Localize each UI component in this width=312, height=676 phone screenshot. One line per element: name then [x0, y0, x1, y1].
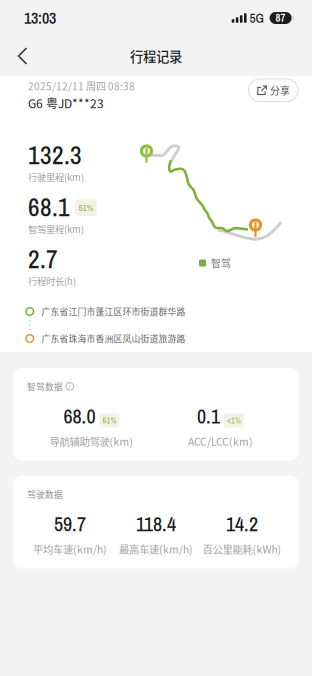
staticText: 广东省珠海市香洲区凤山街道旅游路: [41, 332, 185, 345]
staticText: 5G: [247, 9, 265, 27]
staticText: 行驶里程(km): [28, 170, 84, 184]
staticText: 分享: [270, 83, 290, 97]
staticText: 行程记录: [130, 46, 182, 66]
staticText: 59.7: [54, 510, 86, 537]
staticText: 智驾里程(km): [28, 222, 84, 236]
staticText: 智驾数据: [27, 380, 63, 393]
staticText: 132.3: [28, 138, 82, 172]
staticText: ACC/LCC(km): [188, 434, 253, 449]
staticText: 驾驶数据: [27, 488, 63, 500]
staticText: 百公里能耗(kWh): [202, 541, 281, 556]
staticText: 14.2: [226, 510, 258, 537]
staticText: 13:03: [24, 7, 56, 29]
staticText: 51%: [102, 415, 116, 426]
staticText: 广东省江门市蓬江区环市街道群华路: [41, 305, 185, 318]
staticText: 2025/12/11 周四 08:38: [28, 79, 135, 93]
staticText: 2.7: [28, 242, 58, 276]
staticText: 智驾: [211, 256, 231, 270]
staticText: <1%: [227, 415, 241, 426]
staticText: 51%: [78, 201, 93, 214]
staticText: 68.0: [63, 403, 95, 430]
staticText: 0.1: [197, 403, 220, 430]
staticText: 行程时长(h): [28, 274, 76, 288]
staticText: 118.4: [136, 510, 176, 537]
staticText: 87: [276, 11, 286, 25]
staticText: 导航辅助驾驶(km): [49, 434, 133, 449]
button[interactable]: 分享: [248, 79, 298, 101]
staticText: G6 粤JD***23: [28, 94, 104, 112]
staticText: 68.1: [28, 190, 70, 224]
staticText: 最高车速(km/h): [119, 541, 193, 556]
staticText: i: [69, 382, 71, 391]
button[interactable]: Back: [0, 36, 48, 76]
staticText: 平均车速(km/h): [33, 541, 107, 556]
